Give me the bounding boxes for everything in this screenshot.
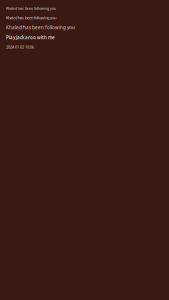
staticText: Play Jackaroo with me: [6, 34, 55, 40]
staticText: Khaled has been following you: [6, 15, 56, 20]
staticText: Khaled has been following you: [6, 24, 75, 31]
staticText: 2024-01-02 10:06: [6, 44, 34, 50]
staticText: Khaled has been following you: [6, 6, 56, 11]
